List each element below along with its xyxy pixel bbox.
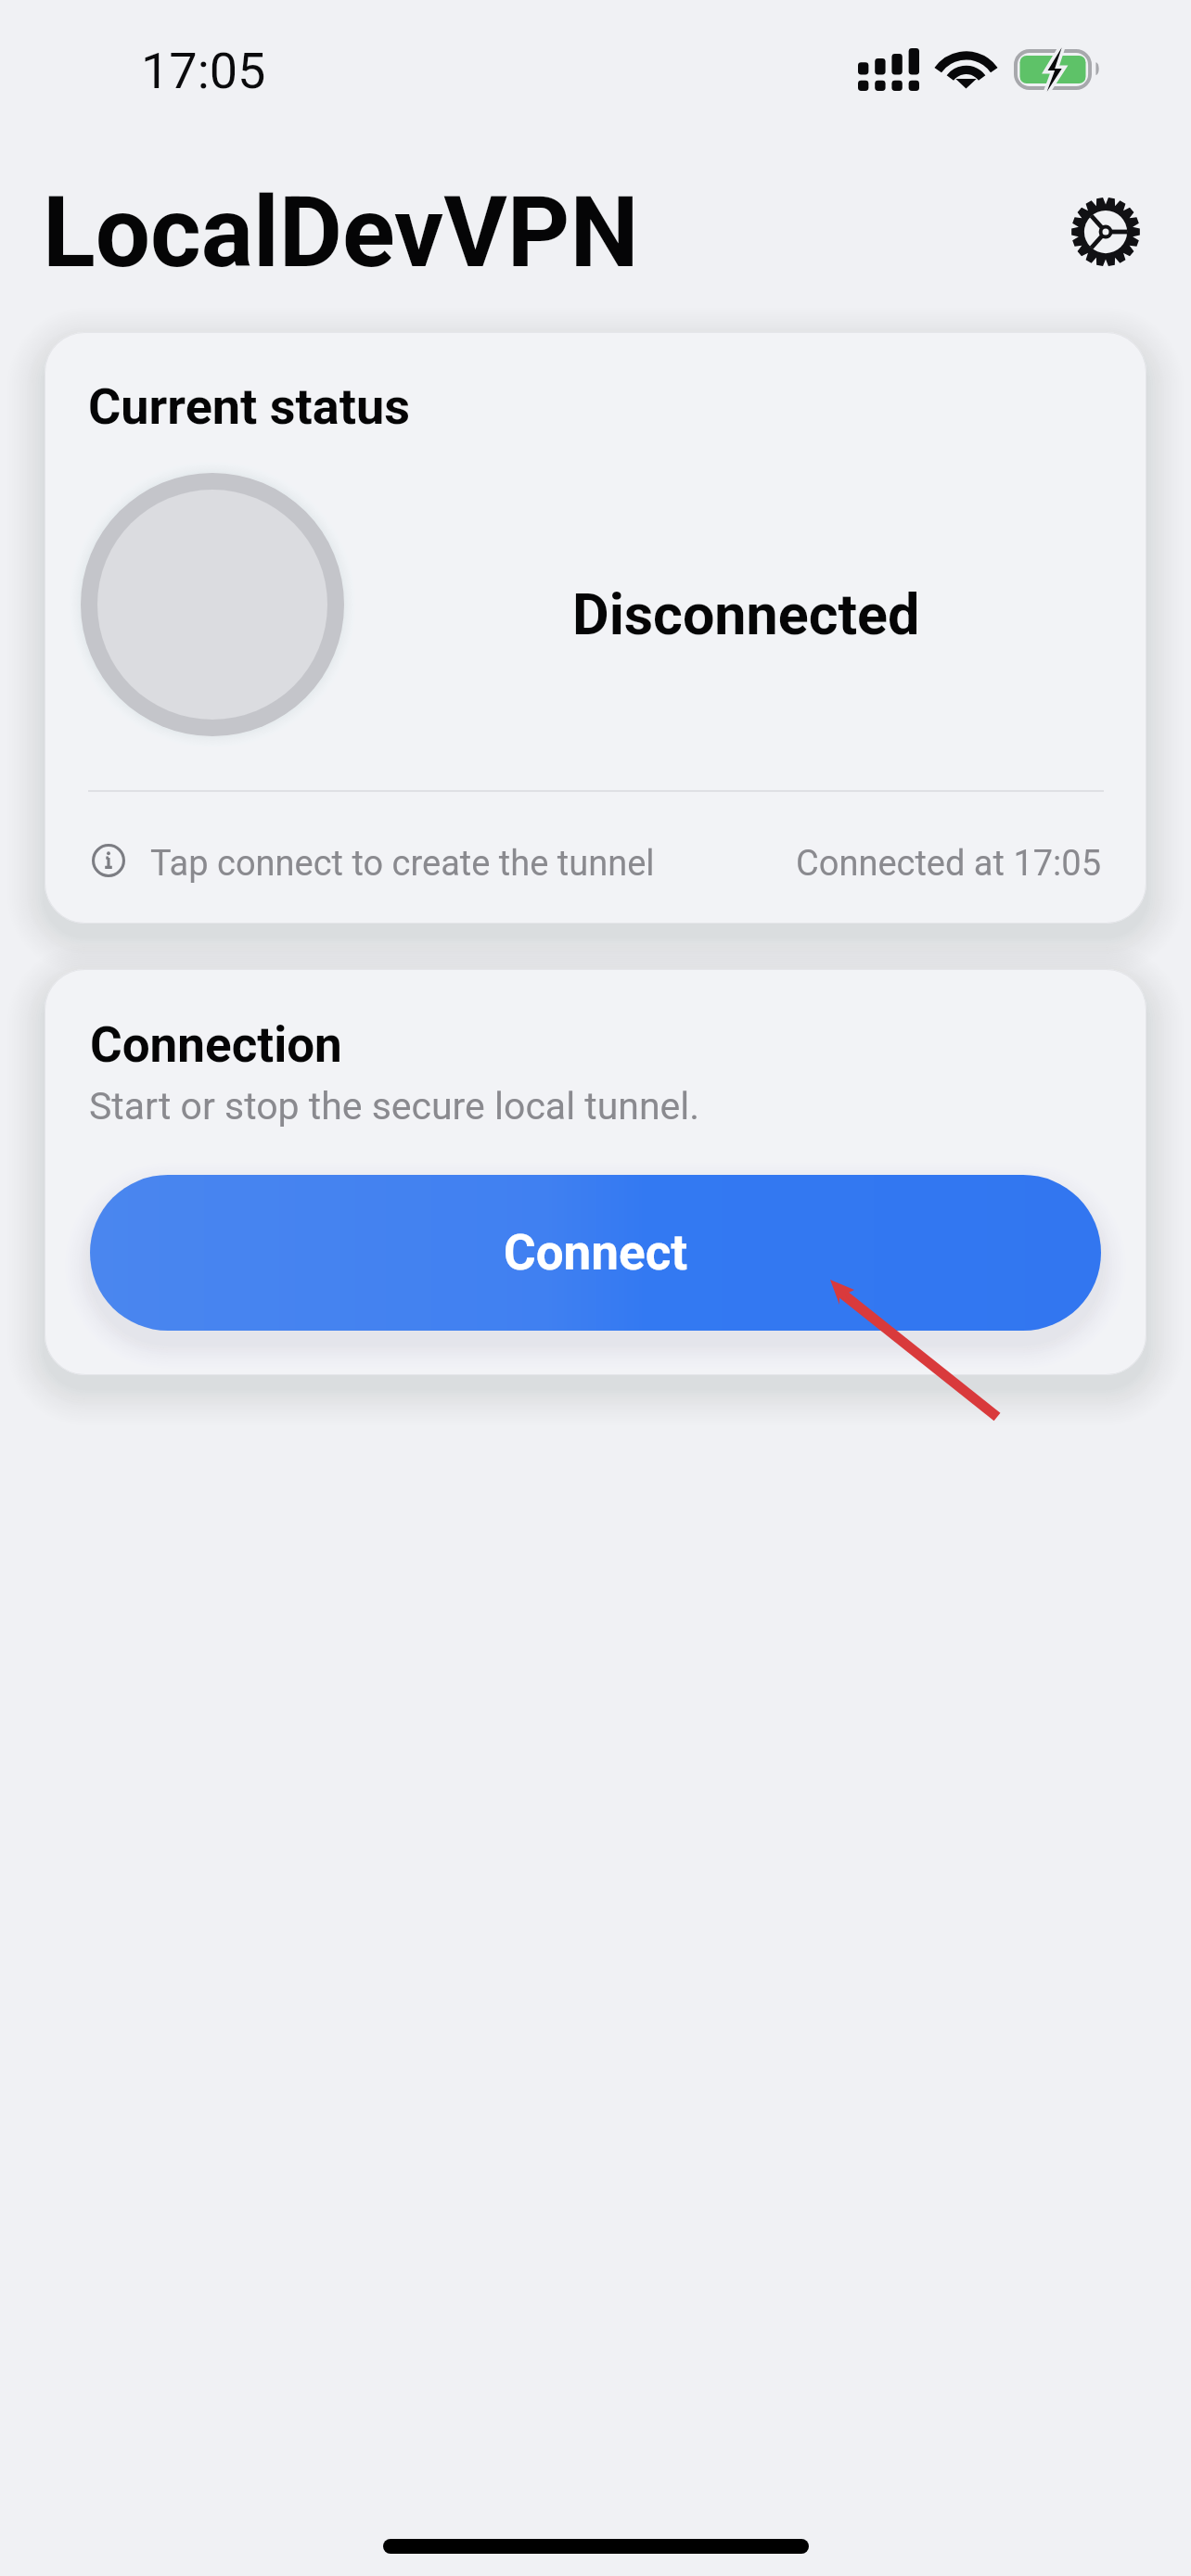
- staticText: Start or stop the secure local tunnel.: [89, 1084, 700, 1129]
- staticText: LocalDevVPN: [43, 176, 639, 290]
- button[interactable]: Settings: [1054, 180, 1158, 284]
- staticText: Connected at 17:05: [796, 843, 1102, 885]
- staticText: Disconnected: [572, 581, 920, 647]
- button[interactable]: Current status: [45, 332, 1146, 924]
- button[interactable]: Connect: [90, 1175, 1101, 1331]
- staticText: Connection: [90, 1016, 342, 1074]
- staticText: Connect: [504, 1224, 688, 1282]
- staticText: 17:05: [141, 42, 266, 100]
- staticText: Tap connect to create the tunnel: [150, 843, 655, 885]
- staticText: Current status: [88, 377, 410, 436]
